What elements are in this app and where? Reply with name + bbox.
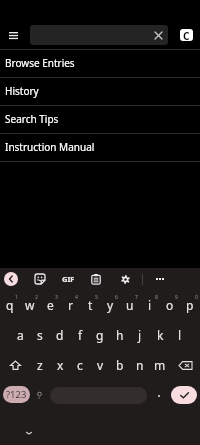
button[interactable]: o: [160, 290, 180, 320]
button[interactable]: Settings: [117, 271, 133, 287]
staticText: 9: [175, 294, 178, 301]
button[interactable]: h: [110, 320, 130, 350]
button[interactable]: n: [130, 350, 150, 380]
staticText: u: [126, 297, 134, 313]
staticText: 8: [155, 294, 158, 301]
button[interactable]: b: [110, 350, 130, 380]
staticText: c: [77, 357, 83, 373]
button[interactable]: d: [50, 320, 70, 350]
staticText: g: [96, 327, 104, 343]
staticText: t: [88, 297, 93, 313]
button[interactable]: t: [80, 290, 100, 320]
button[interactable]: Space: [50, 387, 147, 404]
staticText: w: [25, 297, 35, 313]
staticText: k: [157, 327, 164, 343]
button[interactable]: u: [120, 290, 140, 320]
button[interactable]: Back: [4, 272, 18, 286]
staticText: i: [148, 297, 152, 313]
button[interactable]: q: [0, 290, 20, 320]
staticText: b: [116, 357, 124, 373]
button[interactable]: m: [150, 350, 170, 380]
staticText: r: [68, 297, 73, 313]
staticText: 2: [35, 294, 38, 301]
button[interactable]: More options: [152, 271, 168, 287]
staticText: z: [37, 357, 43, 373]
staticText: d: [56, 327, 64, 343]
button[interactable]: Stickers: [32, 271, 48, 287]
button[interactable]: y: [100, 290, 120, 320]
button[interactable]: p: [180, 290, 200, 320]
staticText: p: [186, 297, 194, 313]
staticText: GIF: [62, 274, 75, 284]
button[interactable]: Clipboard: [88, 271, 104, 287]
button[interactable]: i: [140, 290, 160, 320]
staticText: 6: [115, 294, 118, 301]
button[interactable]: s: [30, 320, 50, 350]
staticText: n: [136, 357, 144, 373]
staticText: a: [17, 327, 24, 343]
staticText: Browse Entries: [5, 56, 75, 70]
staticText: o: [166, 297, 174, 313]
button[interactable]: Hide keyboard: [21, 425, 37, 441]
button[interactable]: e: [40, 290, 60, 320]
button[interactable]: k: [150, 320, 170, 350]
staticText: h: [116, 327, 124, 343]
button[interactable]: Clear: [149, 25, 168, 45]
button[interactable]: Clear: [30, 25, 168, 45]
staticText: 1: [15, 294, 18, 301]
staticText: 5: [95, 294, 98, 301]
button[interactable]: Menu: [1, 23, 25, 47]
button[interactable]: l: [170, 320, 190, 350]
staticText: y: [107, 297, 114, 313]
button[interactable]: Backspace: [170, 350, 200, 380]
staticText: v: [97, 357, 104, 373]
staticText: x: [57, 357, 64, 373]
staticText: e: [47, 297, 54, 313]
staticText: q: [6, 297, 14, 313]
button[interactable]: GIF: [60, 271, 76, 287]
staticText: f: [78, 327, 83, 343]
button[interactable]: g: [90, 320, 110, 350]
staticText: 7: [135, 294, 138, 301]
staticText: l: [178, 327, 182, 343]
button[interactable]: Search Tips: [0, 106, 200, 134]
staticText: 3: [55, 294, 58, 301]
button[interactable]: z: [30, 350, 50, 380]
staticText: History: [5, 84, 39, 98]
button[interactable]: ?123: [3, 386, 30, 403]
button[interactable]: c: [70, 350, 90, 380]
staticText: s: [37, 327, 43, 343]
button[interactable]: v: [90, 350, 110, 380]
staticText: ?123: [6, 388, 27, 401]
staticText: 0: [195, 294, 198, 301]
staticText: j: [138, 327, 142, 343]
button[interactable]: Instruction Manual: [0, 134, 200, 162]
staticText: 4: [75, 294, 78, 301]
staticText: Search Tips: [5, 112, 59, 126]
staticText: m: [154, 357, 166, 373]
button[interactable]: App shortcut: [180, 29, 193, 41]
button[interactable]: j: [130, 320, 150, 350]
staticText: C: [183, 29, 190, 41]
button[interactable]: History: [0, 78, 200, 106]
button[interactable]: Browse Entries: [0, 50, 200, 78]
button[interactable]: Enter: [171, 386, 197, 404]
button[interactable]: f: [70, 320, 90, 350]
button[interactable]: x: [50, 350, 70, 380]
button[interactable]: Emoji: [33, 389, 46, 402]
button[interactable]: w: [20, 290, 40, 320]
button[interactable]: a: [10, 320, 30, 350]
button[interactable]: r: [60, 290, 80, 320]
button[interactable]: Period: [152, 389, 165, 402]
button[interactable]: Shift: [0, 350, 30, 380]
staticText: Instruction Manual: [5, 140, 95, 154]
